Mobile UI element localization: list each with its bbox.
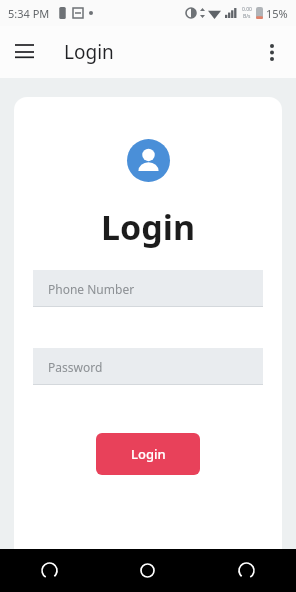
button[interactable]: Phone Number: [33, 270, 263, 307]
button[interactable]: Open navigation menu: [0, 28, 48, 76]
staticText: 5:34 PM: [8, 6, 50, 21]
button[interactable]: Login: [96, 433, 200, 475]
staticText: 0.00: [242, 6, 252, 13]
staticText: Phone Number: [48, 281, 135, 297]
staticText: Login: [131, 445, 166, 463]
staticText: Login: [64, 39, 114, 65]
button[interactable]: Recent apps: [197, 549, 296, 592]
staticText: Password: [48, 359, 103, 375]
button[interactable]: More options: [248, 28, 296, 76]
staticText: Login: [101, 204, 196, 250]
button[interactable]: Home: [98, 549, 197, 592]
button[interactable]: Password: [33, 348, 263, 385]
staticText: 15%: [266, 6, 288, 21]
staticText: B/s: [243, 13, 251, 20]
button[interactable]: Back: [0, 549, 98, 592]
